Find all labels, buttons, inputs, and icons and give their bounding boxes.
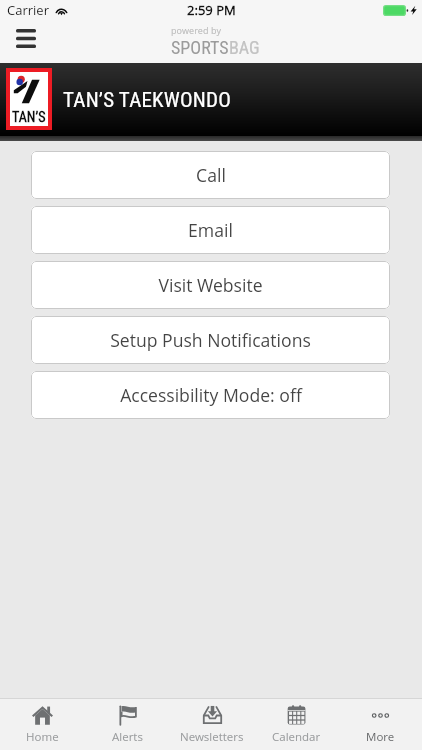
staticText: Calendar [272, 729, 321, 745]
button[interactable]: Newsletters [170, 699, 254, 750]
button[interactable]: Menu [6, 20, 45, 57]
staticText: Home [26, 729, 59, 745]
staticText: BAG [229, 37, 260, 58]
button[interactable]: Accessibility Mode: off [31, 371, 390, 419]
button[interactable]: Calendar [254, 699, 338, 750]
button[interactable]: Alerts [85, 699, 170, 750]
staticText: powered by [171, 24, 222, 36]
staticText: Visit Website [158, 273, 263, 297]
staticText: Email [188, 218, 233, 242]
button[interactable]: Visit Website [31, 261, 390, 309]
button[interactable]: Home [0, 699, 85, 750]
button[interactable]: More [338, 699, 422, 750]
staticText: TAN’S TAEKWONDO [63, 88, 231, 113]
staticText: TAN’S [12, 109, 46, 125]
staticText: 2:59 PM [187, 1, 236, 19]
staticText: Alerts [112, 729, 143, 745]
staticText: Accessibility Mode: off [120, 383, 302, 407]
staticText: Setup Push Notifications [110, 328, 311, 352]
staticText: SPORTS [171, 37, 229, 58]
button[interactable]: Email [31, 206, 390, 254]
button[interactable]: Call [31, 151, 390, 199]
staticText: Call [196, 163, 226, 187]
staticText: Carrier [7, 1, 49, 19]
staticText: More [366, 729, 395, 745]
button[interactable]: Setup Push Notifications [31, 316, 390, 364]
staticText: Newsletters [180, 729, 244, 745]
